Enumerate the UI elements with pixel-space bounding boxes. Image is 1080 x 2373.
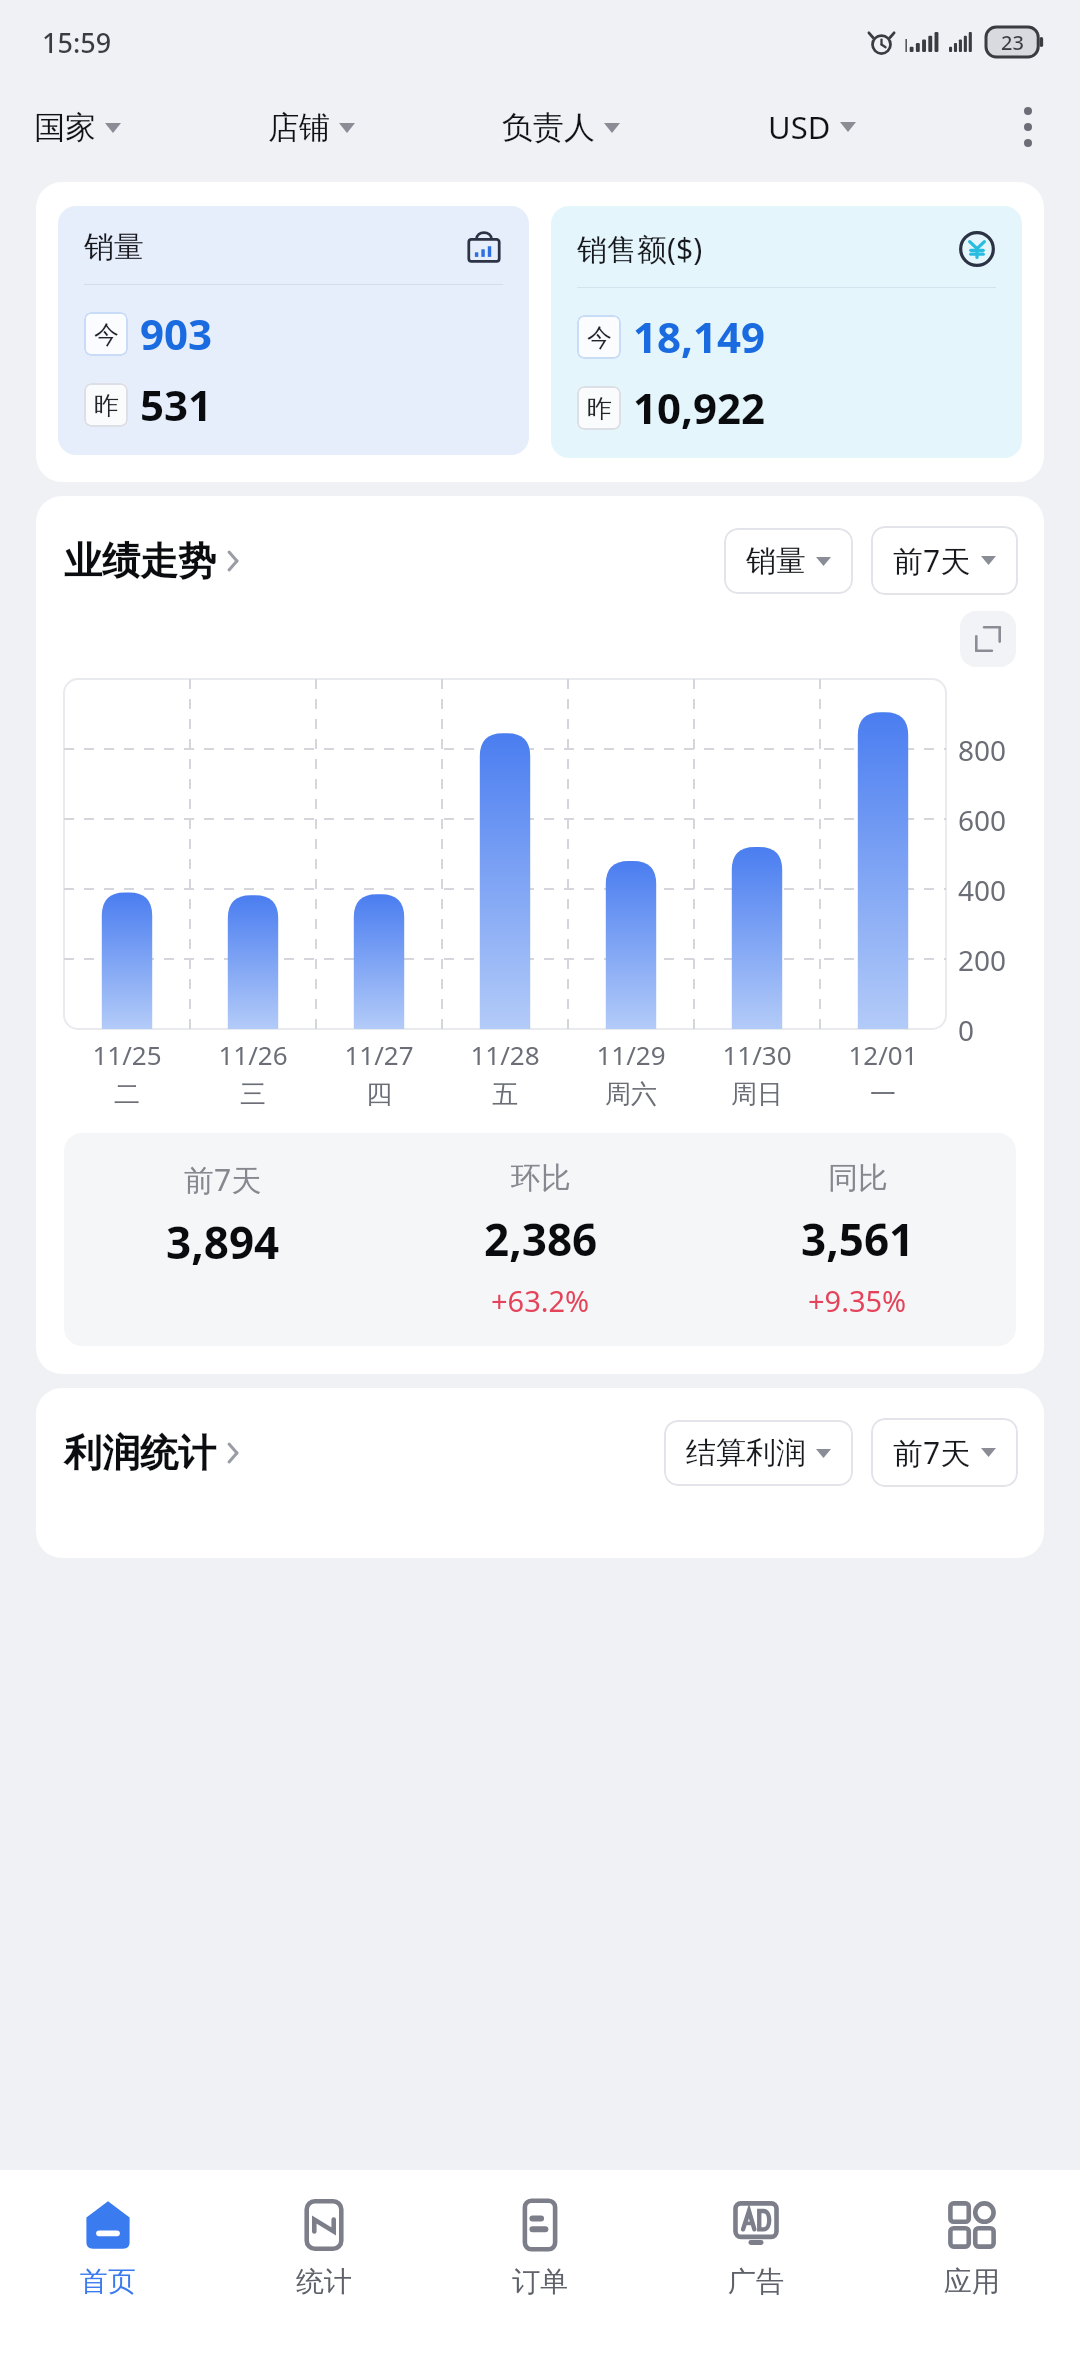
staticText: 周六 <box>605 1078 657 1111</box>
button[interactable]: 负责人 <box>502 100 620 155</box>
staticText: 前7天 <box>184 1159 262 1200</box>
staticText: 五 <box>492 1078 518 1111</box>
staticText: 国家 <box>34 108 96 147</box>
staticText: 一 <box>870 1078 896 1111</box>
staticText: 200 <box>958 941 1007 979</box>
staticText: 结算利润 <box>686 1434 806 1472</box>
button[interactable]: 前7天 <box>871 1418 1018 1487</box>
button[interactable]: 国家 <box>34 100 121 155</box>
staticText: 400 <box>958 871 1007 909</box>
button[interactable]: 店铺 <box>268 100 355 155</box>
button[interactable]: 销售额($) <box>551 206 1022 458</box>
button[interactable]: 应用 <box>864 2192 1080 2305</box>
staticText: USD <box>768 106 831 148</box>
button[interactable]: USD <box>768 98 856 156</box>
staticText: 15:59 <box>42 24 112 61</box>
staticText: +63.2% <box>491 1281 590 1320</box>
staticText: 销售额($) <box>577 228 703 269</box>
button[interactable]: 利润统计 <box>64 1429 240 1477</box>
staticText: 销量 <box>746 542 806 580</box>
staticText: 三 <box>240 1078 266 1111</box>
staticText: 今 <box>587 322 612 353</box>
staticText: 统计 <box>296 2264 352 2299</box>
staticText: 今 <box>94 319 119 350</box>
staticText: 10,922 <box>633 379 766 436</box>
staticText: 11/30 <box>722 1037 792 1072</box>
staticText: 3,561 <box>801 1209 915 1269</box>
staticText: 二 <box>114 1078 140 1111</box>
staticText: 利润统计 <box>64 1429 216 1477</box>
staticText: 903 <box>140 305 213 362</box>
button[interactable]: More options <box>1004 103 1052 151</box>
staticText: 环比 <box>511 1159 571 1197</box>
staticText: +9.35% <box>808 1281 907 1320</box>
staticText: 前7天 <box>893 1432 971 1473</box>
staticText: 3,894 <box>166 1212 280 1272</box>
staticText: 18,149 <box>633 308 766 365</box>
button[interactable]: 前7天 <box>871 526 1018 595</box>
staticText: 同比 <box>828 1159 888 1197</box>
staticText: 昨 <box>587 393 612 424</box>
button[interactable]: 结算利润 <box>664 1420 853 1486</box>
staticText: 广告 <box>728 2264 784 2299</box>
staticText: 11/28 <box>470 1037 540 1072</box>
staticText: 600 <box>958 801 1007 839</box>
staticText: 四 <box>366 1078 392 1111</box>
button[interactable]: 订单 <box>432 2192 648 2305</box>
staticText: 2,386 <box>484 1209 598 1269</box>
button[interactable]: 首页 <box>0 2192 216 2305</box>
staticText: 11/27 <box>344 1037 414 1072</box>
button[interactable]: 销量 <box>58 206 529 455</box>
button[interactable]: Expand chart <box>960 611 1016 667</box>
staticText: 应用 <box>944 2264 1000 2299</box>
staticText: 11/25 <box>92 1037 162 1072</box>
button[interactable]: 业绩走势 <box>64 537 240 585</box>
staticText: 0 <box>958 1011 975 1049</box>
staticText: 11/29 <box>596 1037 666 1072</box>
staticText: 11/26 <box>218 1037 288 1072</box>
staticText: 业绩走势 <box>64 537 216 585</box>
staticText: 首页 <box>80 2264 136 2299</box>
staticText: 前7天 <box>893 540 971 581</box>
staticText: 周日 <box>731 1078 783 1111</box>
button[interactable]: 广告 <box>648 2192 864 2305</box>
staticText: 昨 <box>94 390 119 421</box>
staticText: 店铺 <box>268 108 330 147</box>
staticText: 销量 <box>84 228 144 266</box>
button[interactable]: 统计 <box>216 2192 432 2305</box>
staticText: 订单 <box>512 2264 568 2299</box>
staticText: 531 <box>140 376 213 433</box>
staticText: 12/01 <box>848 1037 918 1072</box>
staticText: 23 <box>1001 29 1024 56</box>
staticText: 负责人 <box>502 108 595 147</box>
button[interactable]: 销量 <box>724 528 853 594</box>
staticText: 800 <box>958 731 1007 769</box>
